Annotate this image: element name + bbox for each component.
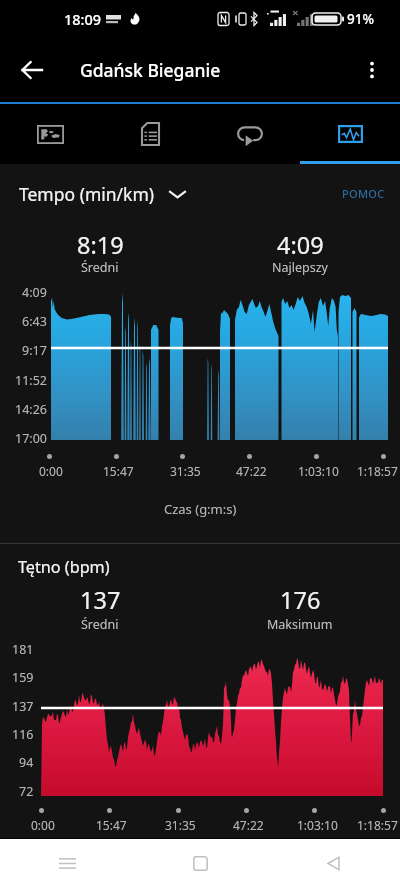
staticText: Tempo (min/km) <box>19 182 155 206</box>
staticText: 11:52 <box>15 372 47 389</box>
button[interactable]: Back <box>267 839 400 888</box>
staticText: 15:47 <box>103 463 134 479</box>
staticText: 137 <box>12 698 34 715</box>
button[interactable]: Home <box>134 839 267 888</box>
staticText: 47:22 <box>236 463 267 479</box>
staticText: 1:18:57 <box>357 463 398 479</box>
staticText: 31:35 <box>165 817 196 833</box>
staticText: 181 <box>12 641 34 658</box>
staticText: Tętno (bpm) <box>18 556 110 578</box>
staticText: 1:03:10 <box>298 463 339 479</box>
staticText: 14:26 <box>15 401 47 418</box>
staticText: 31:35 <box>170 463 201 479</box>
staticText: Średni <box>81 259 119 276</box>
staticText: 9:17 <box>22 342 47 359</box>
staticText: Czas (g:m:s) <box>164 500 237 518</box>
button[interactable]: Map tab <box>0 104 100 164</box>
staticText: 1:03:10 <box>297 817 338 833</box>
staticText: Najlepszy <box>272 259 328 276</box>
staticText: 1:18:57 <box>357 817 398 833</box>
button[interactable]: Back <box>8 46 56 94</box>
staticText: 47:22 <box>233 817 264 833</box>
staticText: 159 <box>12 669 34 686</box>
button[interactable]: Laps tab <box>200 104 300 164</box>
staticText: 18:09 <box>64 9 102 29</box>
staticText: 91% <box>347 10 374 28</box>
staticText: 17:00 <box>15 430 47 447</box>
staticText: 94 <box>19 754 34 771</box>
staticText: 8:19 <box>77 229 124 261</box>
button[interactable]: Details tab <box>100 104 200 164</box>
staticText: 137 <box>80 584 121 616</box>
button[interactable]: Tempo (min/km) <box>19 182 191 206</box>
staticText: Średni <box>81 616 119 633</box>
staticText: Gdańsk Bieganie <box>80 58 221 82</box>
staticText: 6:43 <box>22 313 47 330</box>
staticText: 176 <box>280 584 321 616</box>
staticText: Maksimum <box>267 616 333 633</box>
button[interactable]: Charts tab <box>300 104 400 164</box>
button[interactable]: More options <box>348 46 396 94</box>
staticText: 116 <box>12 726 34 743</box>
button[interactable]: Recent apps <box>0 839 134 888</box>
staticText: 72 <box>19 783 34 800</box>
staticText: 0:00 <box>31 817 55 833</box>
staticText: 4:09 <box>22 284 47 301</box>
staticText: 15:47 <box>96 817 127 833</box>
staticText: 4:09 <box>277 229 324 261</box>
staticText: 0:00 <box>39 463 63 479</box>
staticText: POMOC <box>342 186 385 201</box>
button[interactable]: POMOC <box>339 183 388 204</box>
